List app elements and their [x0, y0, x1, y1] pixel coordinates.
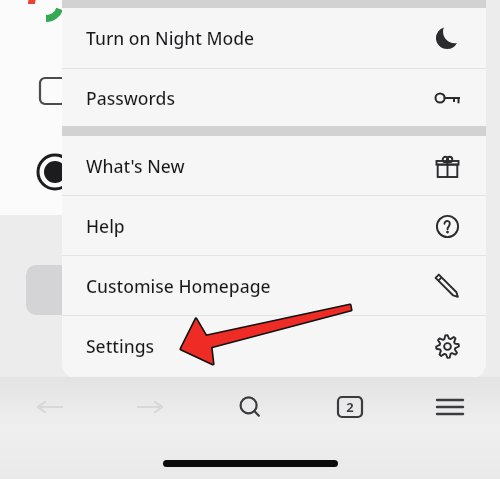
button[interactable]: Back — [0, 377, 100, 437]
staticText: Turn on Night Mode — [86, 26, 255, 50]
staticText: Customise Homepage — [86, 274, 271, 298]
staticText: What's New — [86, 154, 185, 178]
button[interactable]: Turn on Night Mode — [62, 8, 486, 68]
button[interactable]: Forward — [100, 377, 200, 437]
button[interactable]: What's New — [62, 136, 486, 195]
button[interactable]: Menu — [400, 377, 500, 437]
staticText: Settings — [86, 334, 155, 358]
button[interactable]: Help — [62, 196, 486, 255]
button[interactable]: Tabs — [300, 377, 400, 437]
staticText: Help — [86, 214, 125, 238]
button[interactable]: Customise Homepage — [62, 256, 486, 315]
staticText: Passwords — [86, 86, 175, 110]
staticText: 2 — [346, 398, 354, 416]
button[interactable]: Settings — [62, 316, 486, 375]
button[interactable]: Search — [200, 377, 300, 437]
button[interactable]: Passwords — [62, 69, 486, 126]
